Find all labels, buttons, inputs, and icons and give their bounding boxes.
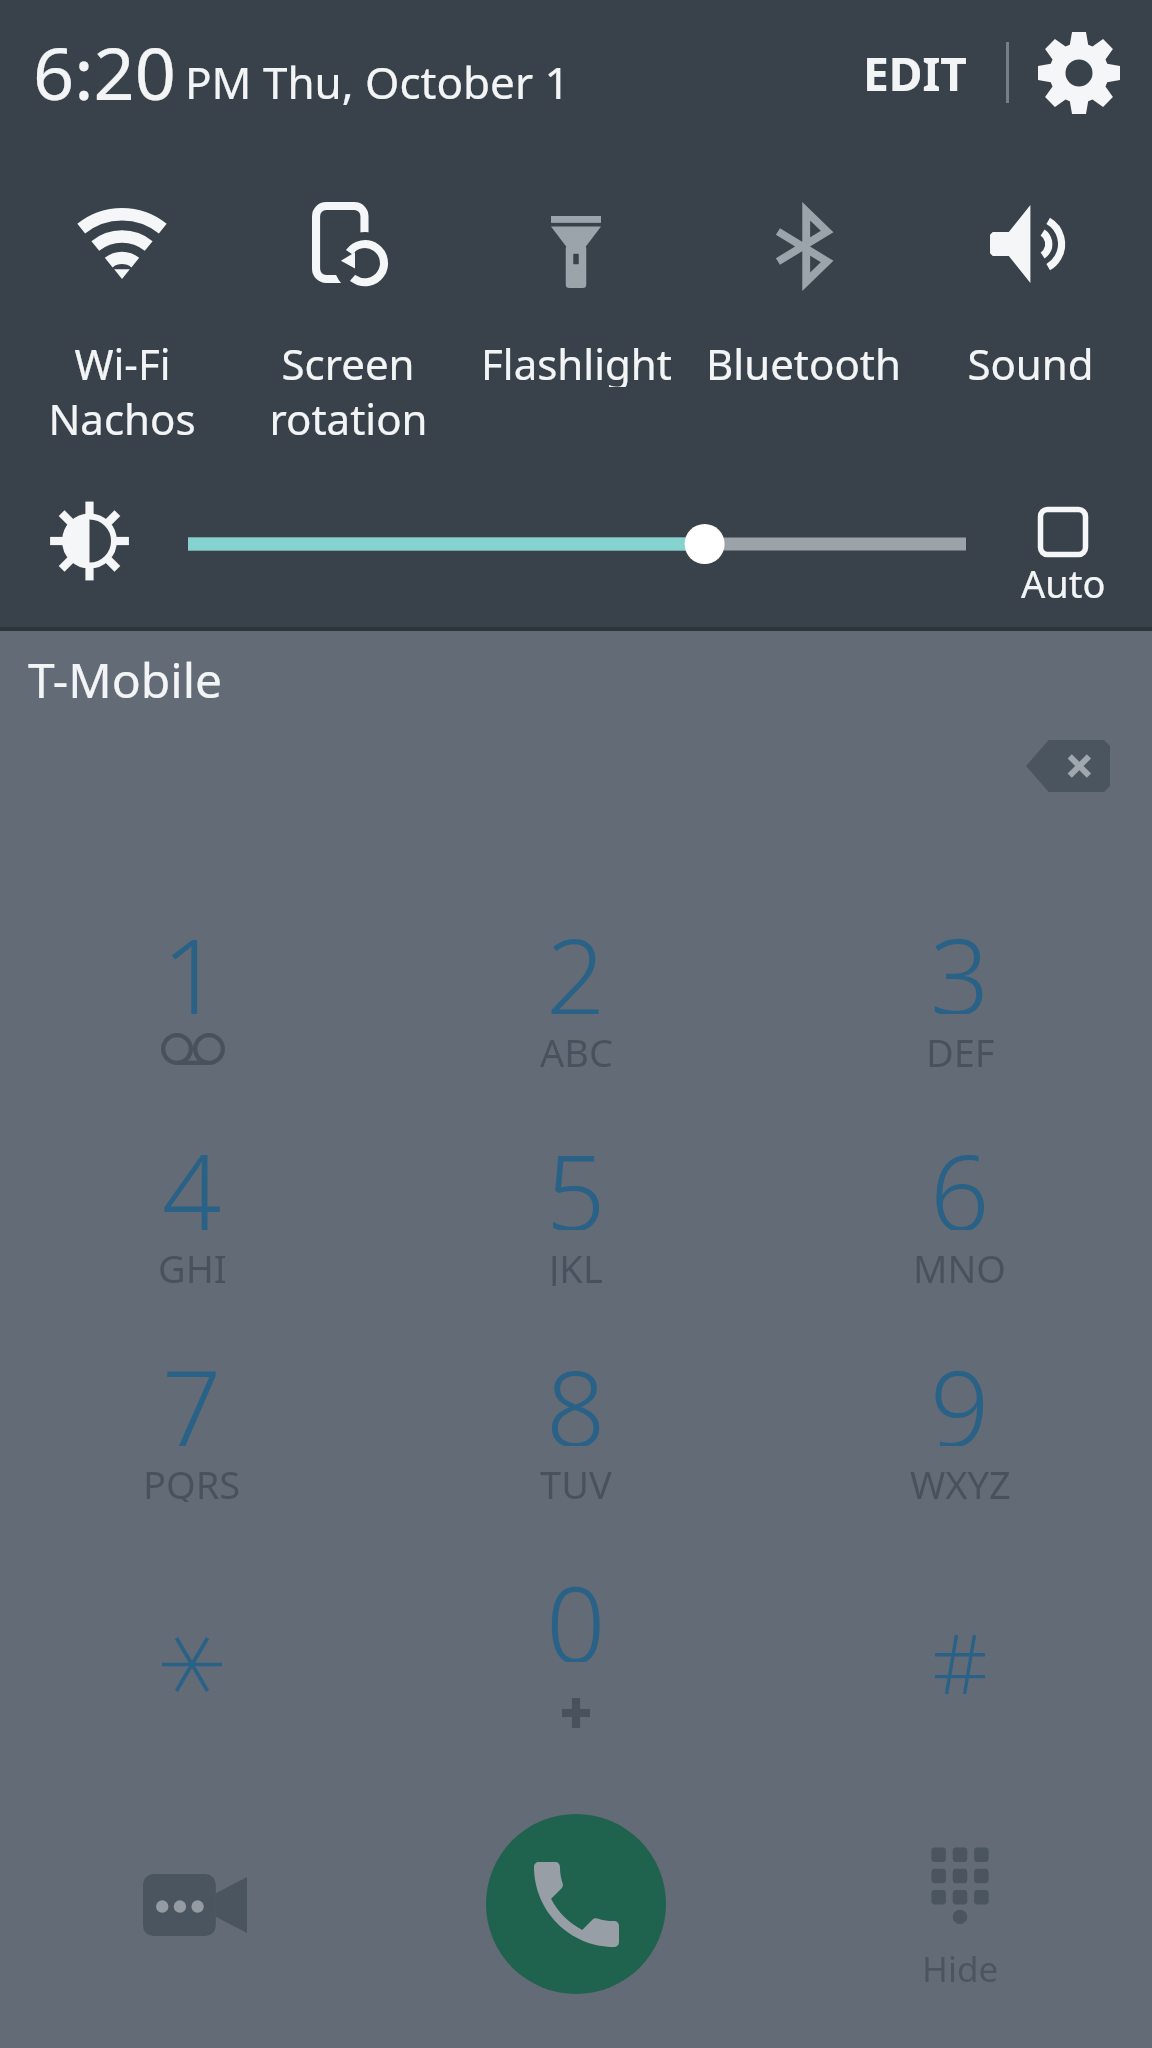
button[interactable]: Sound bbox=[918, 196, 1142, 452]
button[interactable]: Wi-Fi bbox=[10, 196, 234, 452]
staticText: GHI bbox=[158, 1242, 227, 1286]
staticText: Auto bbox=[1021, 557, 1106, 609]
button[interactable]: 9 bbox=[790, 1312, 1130, 1522]
button[interactable]: Screen bbox=[236, 196, 460, 452]
button[interactable]: 3 bbox=[790, 880, 1130, 1090]
staticText: 4 bbox=[162, 1120, 222, 1230]
staticText: Screen bbox=[281, 335, 415, 387]
staticText: DEF bbox=[926, 1026, 995, 1070]
button[interactable]: Hide bbox=[880, 1835, 1040, 2005]
staticText: 5 bbox=[546, 1120, 606, 1230]
button[interactable] bbox=[22, 1528, 362, 1738]
staticText: 1 bbox=[162, 904, 222, 1014]
staticText: Bluetooth bbox=[706, 335, 901, 387]
staticText: PQRS bbox=[143, 1458, 241, 1502]
button[interactable]: Bluetooth bbox=[691, 196, 915, 452]
staticText: 6 bbox=[930, 1120, 990, 1230]
staticText: Hide bbox=[922, 1945, 999, 1993]
button[interactable]: Auto bbox=[1001, 507, 1125, 617]
button[interactable]: EDIT bbox=[845, 28, 985, 118]
button[interactable]: 5 bbox=[406, 1096, 746, 1306]
button[interactable]: Backspace bbox=[1000, 722, 1136, 810]
button[interactable]: Video call bbox=[120, 1850, 270, 1960]
staticText: 0 bbox=[546, 1552, 606, 1662]
staticText: 2 bbox=[546, 904, 606, 1014]
button[interactable]: 4 bbox=[22, 1096, 362, 1306]
staticText: 9 bbox=[930, 1336, 990, 1446]
staticText: 6:20 bbox=[33, 23, 176, 121]
staticText: 8 bbox=[546, 1336, 606, 1446]
staticText: 3 bbox=[930, 904, 990, 1014]
button[interactable]: 8 bbox=[406, 1312, 746, 1522]
button[interactable]: Call bbox=[486, 1814, 666, 1994]
staticText: ABC bbox=[540, 1026, 613, 1070]
staticText: Nachos bbox=[48, 390, 196, 442]
button[interactable]: Brightness bbox=[36, 488, 144, 596]
button[interactable]: 7 bbox=[22, 1312, 362, 1522]
staticText: TUV bbox=[540, 1458, 612, 1502]
staticText: T-Mobile bbox=[28, 647, 223, 712]
button[interactable]: 1 bbox=[22, 880, 362, 1090]
staticText: Wi-Fi bbox=[74, 335, 171, 387]
staticText: PM Thu, October 1 bbox=[185, 52, 570, 112]
button[interactable]: 0 bbox=[406, 1528, 746, 1738]
staticText: MNO bbox=[913, 1242, 1007, 1286]
staticText: WXYZ bbox=[910, 1458, 1011, 1502]
button[interactable]: 6 bbox=[790, 1096, 1130, 1306]
button[interactable] bbox=[790, 1528, 1130, 1738]
staticText: rotation bbox=[269, 390, 428, 442]
button[interactable]: Brightness slider bbox=[160, 504, 1000, 584]
staticText: Sound bbox=[967, 335, 1094, 387]
button[interactable]: Settings bbox=[1036, 30, 1122, 116]
staticText: 7 bbox=[162, 1336, 222, 1446]
button[interactable]: 2 bbox=[406, 880, 746, 1090]
button[interactable]: Flashlight bbox=[464, 196, 688, 452]
staticText: Flashlight bbox=[481, 335, 672, 387]
staticText: EDIT bbox=[863, 42, 967, 105]
staticText: JKL bbox=[549, 1242, 603, 1286]
